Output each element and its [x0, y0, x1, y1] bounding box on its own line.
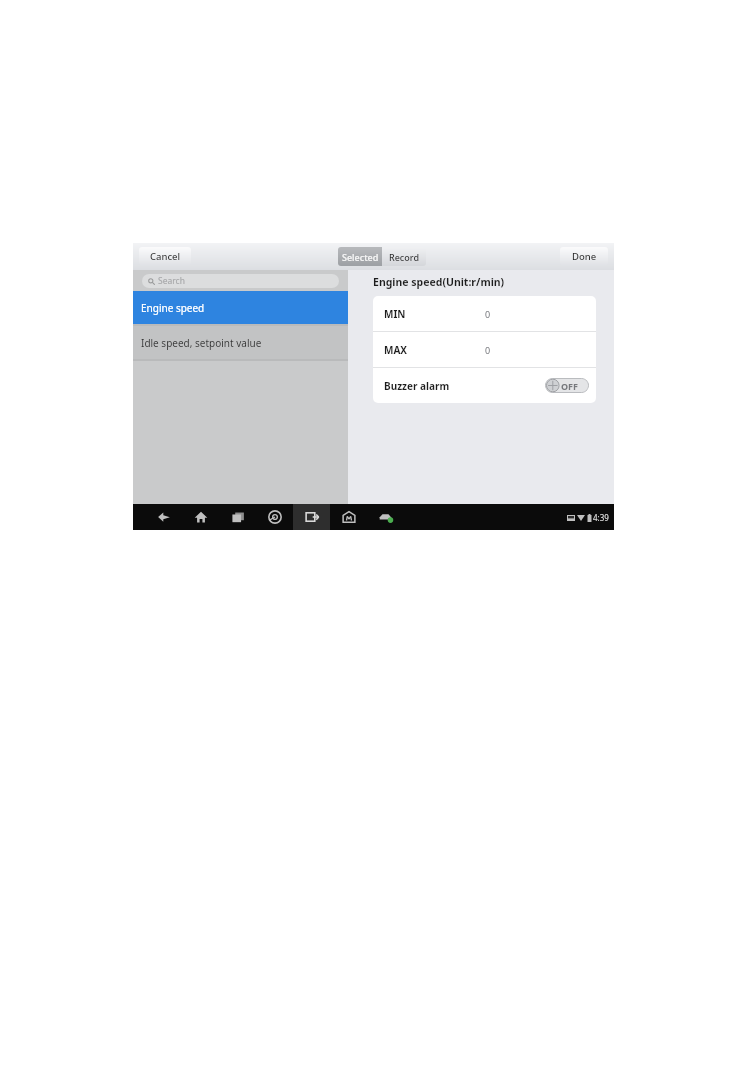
button[interactable]: Idle speed, setpoint value — [133, 326, 348, 359]
button[interactable]: Record — [382, 247, 426, 266]
button[interactable]: Buzzer alarm toggle, off — [545, 378, 589, 393]
staticText: Selected — [342, 251, 379, 263]
button[interactable]: Home — [182, 504, 219, 530]
button[interactable]: Search — [142, 274, 339, 288]
staticText: 0 — [485, 344, 491, 356]
button[interactable]: Engine speed — [133, 291, 348, 324]
staticText: Buzzer alarm — [384, 379, 450, 393]
staticText: MIN — [384, 307, 406, 321]
button[interactable]: Screenshot — [293, 504, 330, 530]
staticText: OFF — [561, 380, 579, 392]
button[interactable]: MIN — [373, 296, 596, 331]
button[interactable]: Selected — [338, 247, 382, 266]
staticText: Cancel — [150, 250, 181, 263]
staticText: Idle speed, setpoint value — [141, 336, 262, 350]
staticText: 0 — [485, 308, 491, 320]
button[interactable]: MAX — [373, 332, 596, 367]
staticText: Engine speed — [141, 301, 205, 315]
button[interactable]: Shop — [330, 504, 367, 530]
staticText: Record — [389, 251, 419, 263]
button[interactable]: Vehicle — [367, 504, 404, 530]
button[interactable]: Cancel — [139, 247, 191, 266]
button[interactable]: Browser — [256, 504, 293, 530]
staticText: 4:39 — [593, 512, 609, 523]
staticText: Done — [572, 250, 597, 263]
staticText: Search — [158, 275, 185, 287]
button[interactable]: Recent apps — [219, 504, 256, 530]
button[interactable]: Buzzer alarm — [373, 368, 596, 403]
staticText: MAX — [384, 343, 408, 357]
button[interactable]: Back — [145, 504, 182, 530]
button[interactable]: Done — [560, 247, 608, 266]
staticText: Engine speed(Unit:r/min) — [373, 275, 505, 289]
